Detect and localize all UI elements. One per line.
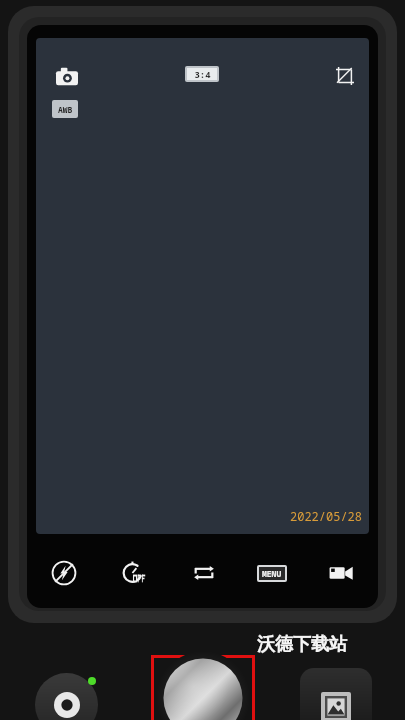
staticText: 3:4 bbox=[194, 68, 211, 80]
button[interactable]: 3:4 bbox=[185, 66, 219, 82]
button[interactable]: Switch camera bbox=[186, 555, 222, 591]
staticText: AWB bbox=[58, 104, 73, 115]
button[interactable]: Gallery bbox=[300, 668, 372, 720]
button[interactable]: Flash off bbox=[46, 555, 82, 591]
staticText: 2022/05/28 bbox=[290, 508, 363, 524]
button[interactable]: AWB bbox=[52, 100, 78, 118]
button[interactable]: Crop bbox=[331, 62, 359, 90]
staticText: 沃德下载站 bbox=[257, 633, 347, 656]
button[interactable]: Camera mode bbox=[53, 62, 81, 90]
button[interactable]: Video mode bbox=[323, 555, 359, 591]
button[interactable]: Shutter bbox=[151, 655, 255, 720]
button[interactable]: Timer off bbox=[116, 555, 152, 591]
button[interactable]: Menu bbox=[255, 556, 289, 590]
staticText: MENU bbox=[262, 568, 282, 579]
button[interactable]: Camera bbox=[35, 673, 98, 720]
